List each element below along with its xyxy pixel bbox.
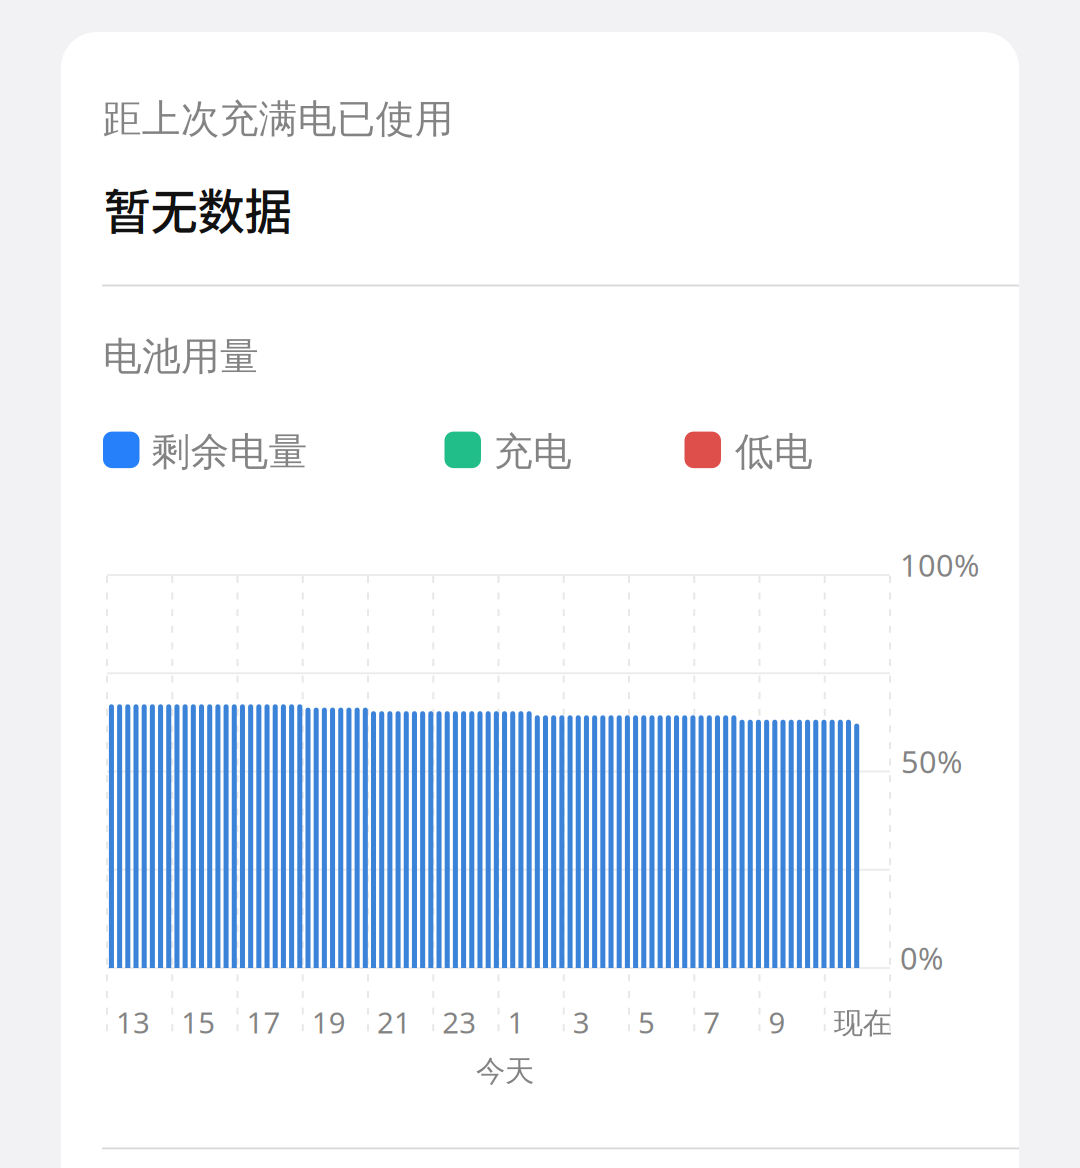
- staticText: 7: [703, 1002, 720, 1042]
- staticText: 低电: [735, 427, 813, 476]
- staticText: 现在: [834, 1005, 892, 1042]
- staticText: 电池用量: [103, 332, 259, 381]
- staticText: 3: [573, 1002, 590, 1042]
- staticText: 充电: [494, 427, 572, 476]
- staticText: 1: [507, 1002, 524, 1042]
- staticText: 5: [638, 1002, 655, 1042]
- staticText: 距上次充满电已使用: [103, 95, 454, 143]
- staticText: 21: [377, 1002, 411, 1042]
- staticText: 9: [768, 1002, 785, 1042]
- staticText: 100%: [900, 544, 979, 586]
- staticText: 暂无数据: [103, 174, 291, 243]
- staticText: 50%: [901, 740, 962, 782]
- staticText: 17: [246, 1002, 280, 1042]
- staticText: 今天: [476, 1053, 534, 1090]
- staticText: 23: [442, 1002, 476, 1042]
- staticText: 13: [116, 1002, 150, 1042]
- staticText: 15: [181, 1002, 215, 1042]
- staticText: 19: [312, 1002, 346, 1042]
- staticText: 0%: [900, 937, 943, 979]
- staticText: 剩余电量: [152, 427, 308, 476]
